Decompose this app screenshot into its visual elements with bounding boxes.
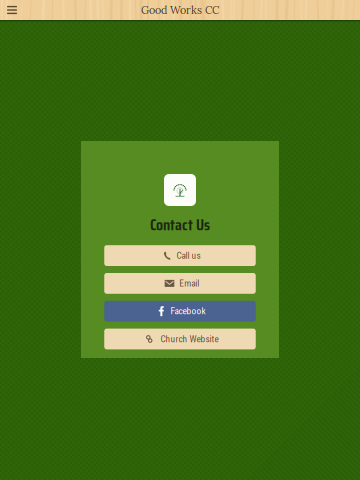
staticText: Facebook: [170, 306, 205, 317]
staticText: Call us: [176, 250, 200, 261]
button[interactable]: Church Website: [104, 329, 256, 349]
staticText: Good Works CC: [141, 3, 219, 17]
button[interactable]: Menu: [2, 0, 22, 20]
staticText: Church Website: [160, 333, 218, 344]
staticText: Contact Us: [150, 212, 210, 237]
button[interactable]: Facebook: [104, 301, 256, 322]
button[interactable]: Call us: [104, 245, 256, 266]
staticText: Email: [179, 278, 199, 289]
button[interactable]: Email: [104, 273, 256, 294]
